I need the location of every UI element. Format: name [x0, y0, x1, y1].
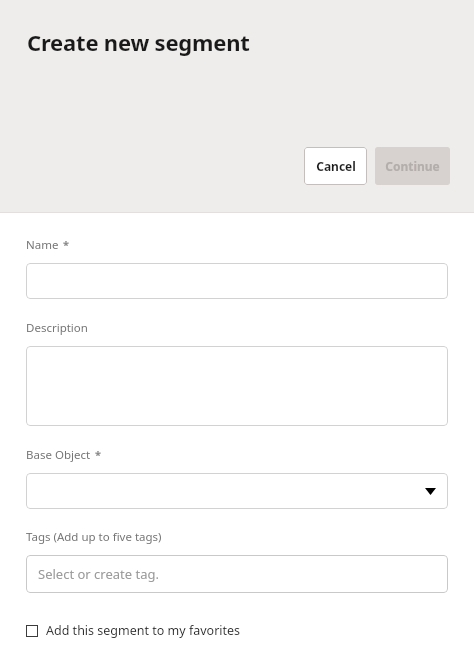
staticText: Base Object: [26, 447, 91, 463]
button[interactable]: [26, 263, 448, 299]
button[interactable]: Select or create tag.: [26, 555, 448, 593]
staticText: Add this segment to my favorites: [46, 622, 241, 639]
staticText: Continue: [385, 158, 440, 174]
staticText: Name: [26, 237, 59, 253]
staticText: Tags (Add up to five tags): [26, 529, 162, 545]
staticText: Create new segment: [27, 27, 250, 57]
staticText: *: [63, 237, 69, 252]
staticText: Cancel: [316, 158, 356, 174]
button[interactable]: Continue: [375, 147, 450, 185]
button[interactable]: Select base object: [26, 473, 448, 509]
staticText: Description: [26, 320, 88, 336]
staticText: Select or create tag.: [38, 565, 159, 583]
staticText: *: [95, 447, 101, 462]
button[interactable]: [26, 346, 448, 426]
button[interactable]: Add this segment to my favorites: [26, 620, 241, 641]
button[interactable]: Cancel: [304, 147, 367, 185]
